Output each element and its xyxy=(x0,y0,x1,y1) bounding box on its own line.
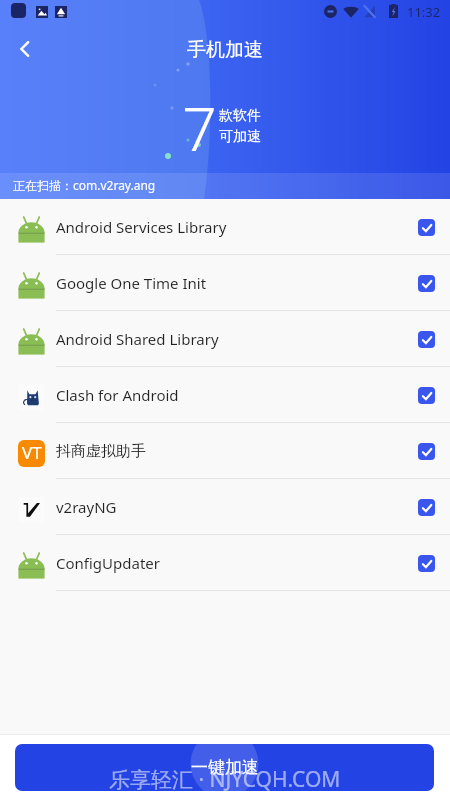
staticText: 11:32 xyxy=(407,3,441,21)
button[interactable]: Select app xyxy=(413,550,439,576)
staticText: 乐享轻汇 · NJYCQH.COM xyxy=(109,765,341,794)
button[interactable]: Select app xyxy=(413,438,439,464)
button[interactable]: v2rayNG xyxy=(0,479,450,535)
staticText: 正在扫描：com.v2ray.ang xyxy=(13,177,156,193)
button[interactable]: Select app xyxy=(413,494,439,520)
staticText: 一键加速 xyxy=(191,757,259,778)
button[interactable]: Select app xyxy=(413,326,439,352)
button[interactable]: Google One Time Init xyxy=(0,255,450,311)
button[interactable]: Select app xyxy=(413,270,439,296)
button[interactable]: 一键加速 xyxy=(15,744,434,791)
staticText: 抖商虚拟助手 xyxy=(56,442,146,461)
button[interactable]: Clash for Android xyxy=(0,367,450,423)
staticText: Google One Time Init xyxy=(56,273,207,293)
button[interactable]: ConfigUpdater xyxy=(0,535,450,591)
button[interactable]: VT xyxy=(0,423,450,479)
staticText: Android Services Library xyxy=(56,217,227,237)
staticText: v2rayNG xyxy=(56,497,117,517)
button[interactable]: Android Services Library xyxy=(0,199,450,255)
button[interactable]: Android Shared Library xyxy=(0,311,450,367)
staticText: 款软件 xyxy=(219,107,261,125)
staticText: 可加速 xyxy=(219,128,261,146)
button[interactable]: Select app xyxy=(413,214,439,240)
staticText: ConfigUpdater xyxy=(56,553,160,573)
staticText: VT xyxy=(22,441,42,464)
staticText: Android Shared Library xyxy=(56,329,219,349)
staticText: 7 xyxy=(182,86,217,169)
staticText: Clash for Android xyxy=(56,385,179,405)
staticText: 手机加速 xyxy=(187,38,263,62)
button[interactable]: Back xyxy=(5,29,45,69)
button[interactable]: Select app xyxy=(413,382,439,408)
